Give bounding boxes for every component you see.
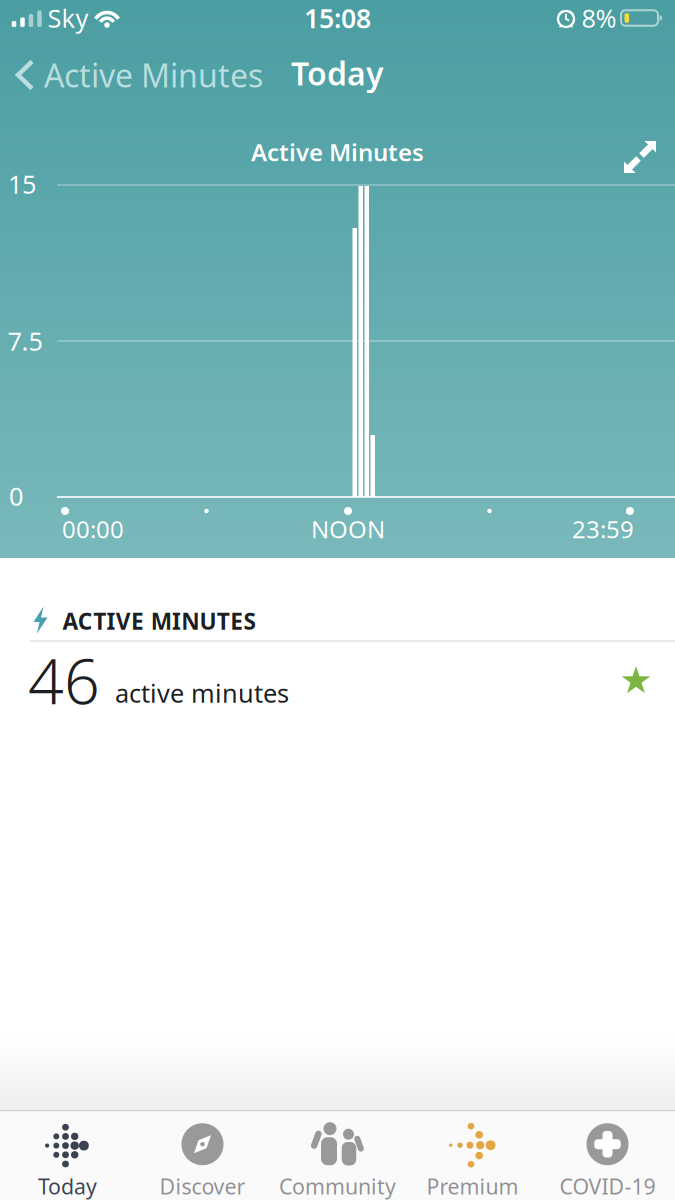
staticText: Today [291, 52, 384, 94]
staticText: Discover [159, 1172, 245, 1200]
staticText: Premium [426, 1172, 518, 1200]
button[interactable]: Discover [135, 1111, 270, 1200]
staticText: 15 [8, 167, 36, 201]
staticText: Sky [47, 1, 88, 35]
button[interactable]: Community [270, 1111, 405, 1200]
button[interactable]: Premium [405, 1111, 540, 1200]
staticText: 8% [581, 1, 616, 35]
staticText: 0 [9, 479, 23, 513]
staticText: 46 [28, 638, 100, 722]
staticText: Today [38, 1172, 97, 1200]
staticText: Active Minutes [251, 136, 424, 168]
staticText: NOON [311, 513, 385, 545]
staticText: Community [279, 1172, 396, 1200]
button[interactable]: Back [15, 52, 315, 98]
button[interactable]: Today [0, 1111, 135, 1200]
staticText: Active Minutes [44, 54, 263, 96]
staticText: 15:08 [304, 0, 371, 36]
staticText: 7.5 [7, 324, 42, 358]
button[interactable]: Expand chart [619, 136, 659, 176]
staticText: COVID-19 [559, 1172, 655, 1200]
staticText: ACTIVE MINUTES [63, 606, 255, 636]
button[interactable]: COVID-19 [540, 1111, 675, 1200]
staticText: 00:00 [62, 513, 124, 545]
staticText: active minutes [115, 676, 289, 710]
staticText: 23:59 [572, 513, 634, 545]
